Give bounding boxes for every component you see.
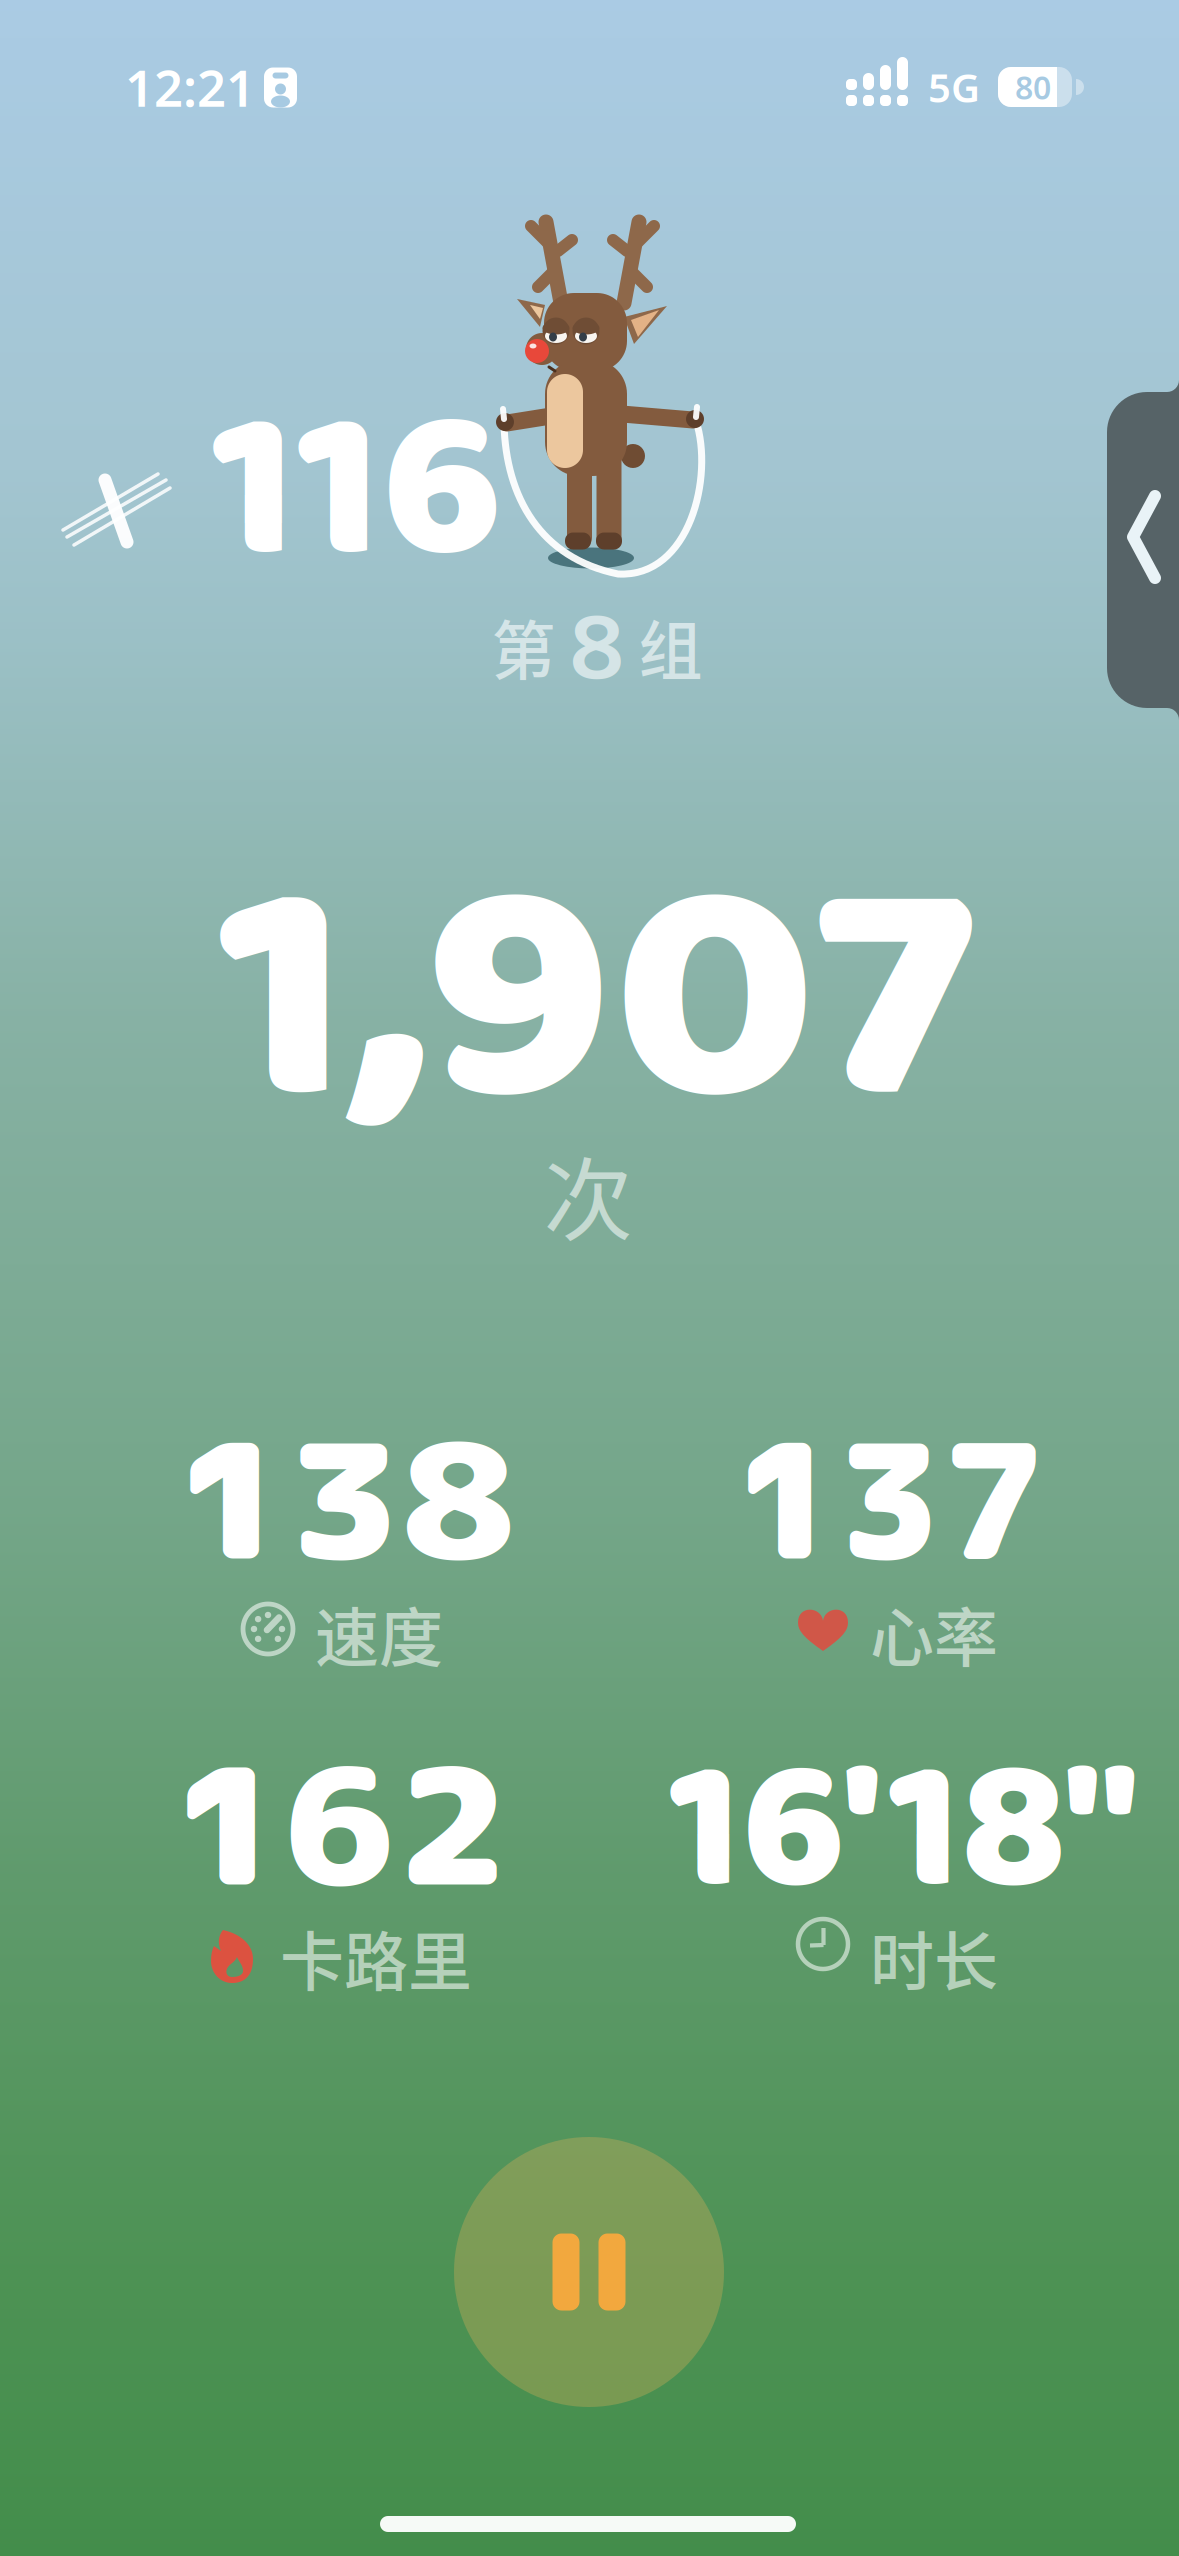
staticText: 116 <box>216 324 497 660</box>
staticText: 心率 <box>870 1587 998 1679</box>
staticText: 137 <box>734 1389 1046 1609</box>
staticText: 8 <box>569 586 624 705</box>
staticText: 138 <box>189 1389 501 1609</box>
staticText: 时长 <box>870 1911 998 2003</box>
button[interactable]: Pause <box>454 2137 724 2407</box>
staticText: 第 <box>491 600 555 692</box>
button[interactable]: Open side panel <box>1107 392 1179 708</box>
staticText: 162 <box>181 1712 499 1936</box>
staticText: 80 <box>1015 66 1051 108</box>
staticText: 5G <box>928 60 980 113</box>
staticText: 1,907 <box>243 752 948 1254</box>
staticText: 组 <box>638 600 702 692</box>
staticText: 16'18" <box>673 1686 1135 1978</box>
staticText: 12:21 <box>125 53 255 121</box>
staticText: 次 <box>543 1129 632 1259</box>
staticText: 卡路里 <box>280 1911 472 2003</box>
staticText: 速度 <box>315 1587 443 1679</box>
